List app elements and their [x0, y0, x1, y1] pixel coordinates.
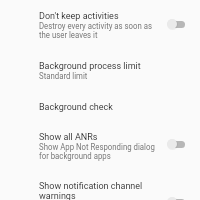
staticText: Background check: [39, 101, 113, 112]
staticText: Show App Not Responding dialog for backg…: [39, 143, 157, 161]
button[interactable]: [0, 1, 200, 45]
button[interactable]: [0, 121, 200, 165]
staticText: Background process limit: [39, 60, 141, 71]
button[interactable]: [0, 92, 200, 118]
button[interactable]: [0, 170, 200, 200]
staticText: Don't keep activities: [39, 10, 119, 21]
staticText: Show notification channel warnings: [39, 180, 157, 200]
staticText: Show all ANRs: [39, 131, 98, 142]
staticText: Standard limit: [39, 72, 88, 81]
button[interactable]: [0, 50, 200, 85]
button[interactable]: Show notification channel warnings: [164, 193, 188, 200]
staticText: Destroy every activity as soon as the us…: [39, 22, 157, 40]
button[interactable]: Show all ANRs: [164, 135, 188, 153]
button[interactable]: Don't keep activities: [164, 15, 188, 33]
